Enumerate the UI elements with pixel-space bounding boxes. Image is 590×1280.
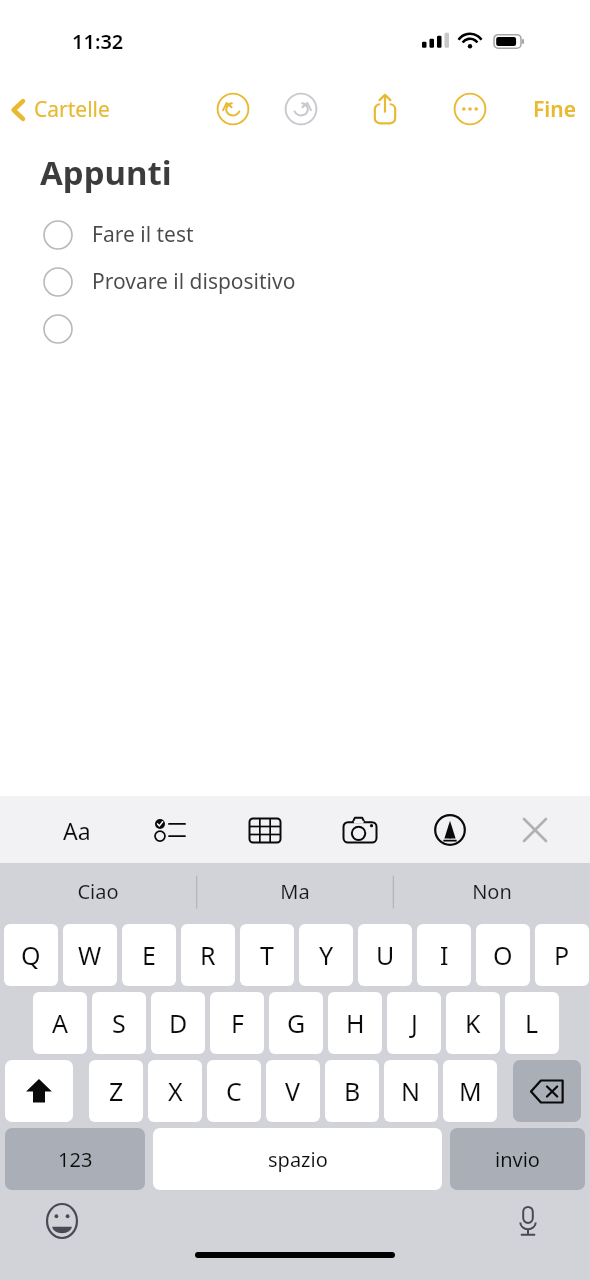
staticText: Fare il test bbox=[92, 220, 194, 249]
button[interactable]: H bbox=[328, 992, 382, 1054]
other: Backspace bbox=[530, 1079, 564, 1104]
staticText: U bbox=[376, 938, 395, 972]
button[interactable]: R bbox=[181, 924, 235, 986]
staticText: Y bbox=[319, 938, 334, 972]
button[interactable]: Table bbox=[238, 803, 292, 857]
staticText: I bbox=[440, 938, 449, 972]
staticText: W bbox=[78, 938, 102, 972]
staticText: Z bbox=[109, 1074, 124, 1108]
staticText: F bbox=[231, 1006, 244, 1040]
staticText: Aa bbox=[63, 815, 91, 846]
button[interactable]: Undo bbox=[210, 86, 256, 132]
button[interactable]: Provare il dispositivo bbox=[0, 258, 590, 305]
other: Shift bbox=[24, 1076, 54, 1106]
button[interactable]: S bbox=[92, 992, 146, 1054]
staticText: T bbox=[260, 938, 274, 972]
button[interactable]: D bbox=[151, 992, 205, 1054]
staticText: Fine bbox=[533, 95, 576, 124]
button[interactable]: Camera bbox=[333, 803, 387, 857]
button[interactable]: Y bbox=[299, 924, 353, 986]
button[interactable]: Fine bbox=[519, 87, 590, 132]
staticText: G bbox=[287, 1006, 306, 1040]
button[interactable]: K bbox=[446, 992, 500, 1054]
staticText: L bbox=[525, 1006, 539, 1040]
button[interactable]: U bbox=[358, 924, 412, 986]
staticText: R bbox=[200, 938, 216, 972]
staticText: O bbox=[493, 938, 513, 972]
staticText: X bbox=[168, 1074, 183, 1108]
staticText: C bbox=[226, 1074, 242, 1108]
staticText: Q bbox=[21, 938, 41, 972]
button[interactable]: Share bbox=[362, 86, 408, 132]
button[interactable]: A bbox=[33, 992, 87, 1054]
button[interactable]: Q bbox=[4, 924, 58, 986]
button[interactable]: More options bbox=[447, 86, 493, 132]
button[interactable]: Emoji bbox=[38, 1197, 86, 1245]
staticText: H bbox=[346, 1006, 365, 1040]
button[interactable]: G bbox=[269, 992, 323, 1054]
staticText: D bbox=[169, 1006, 188, 1040]
button[interactable] bbox=[0, 305, 590, 352]
staticText: invio bbox=[495, 1146, 540, 1173]
button[interactable]: C bbox=[207, 1060, 261, 1122]
button[interactable]: Cartelle bbox=[0, 89, 120, 130]
button[interactable]: E bbox=[122, 924, 176, 986]
button[interactable]: Close bbox=[508, 803, 562, 857]
staticText: Appunti bbox=[40, 150, 172, 195]
button[interactable]: P bbox=[535, 924, 589, 986]
staticText: V bbox=[285, 1074, 301, 1108]
button[interactable]: N bbox=[384, 1060, 438, 1122]
button[interactable]: Markup bbox=[423, 803, 477, 857]
button[interactable]: V bbox=[266, 1060, 320, 1122]
button[interactable]: Fare il test bbox=[0, 211, 590, 258]
button[interactable]: Ma bbox=[196, 863, 393, 920]
button[interactable]: invio bbox=[450, 1128, 585, 1190]
button[interactable]: T bbox=[240, 924, 294, 986]
button[interactable]: F bbox=[210, 992, 264, 1054]
button[interactable]: W bbox=[63, 924, 117, 986]
staticText: P bbox=[554, 938, 570, 972]
staticText: E bbox=[142, 938, 156, 972]
button[interactable]: I bbox=[417, 924, 471, 986]
button[interactable]: M bbox=[443, 1060, 497, 1122]
staticText: J bbox=[411, 1006, 418, 1040]
button[interactable]: J bbox=[387, 992, 441, 1054]
button[interactable]: Checklist bbox=[143, 803, 197, 857]
staticText: S bbox=[112, 1006, 126, 1040]
staticText: B bbox=[344, 1074, 361, 1108]
staticText: A bbox=[52, 1006, 68, 1040]
button[interactable]: Dictation bbox=[504, 1197, 552, 1245]
staticText: Cartelle bbox=[34, 95, 110, 124]
staticText: spazio bbox=[268, 1146, 328, 1173]
staticText: Ciao bbox=[77, 878, 119, 905]
button[interactable]: Z bbox=[89, 1060, 143, 1122]
staticText: M bbox=[459, 1074, 482, 1108]
button[interactable]: L bbox=[505, 992, 559, 1054]
button[interactable]: Ciao bbox=[0, 863, 196, 920]
button[interactable]: B bbox=[325, 1060, 379, 1122]
staticText: 123 bbox=[58, 1146, 93, 1173]
button[interactable]: Non bbox=[393, 863, 590, 920]
button[interactable]: Redo bbox=[278, 86, 324, 132]
button[interactable]: O bbox=[476, 924, 530, 986]
staticText: K bbox=[465, 1006, 481, 1040]
staticText: Ma bbox=[280, 878, 310, 905]
staticText: Non bbox=[472, 878, 512, 905]
button[interactable]: X bbox=[148, 1060, 202, 1122]
button[interactable]: Text format bbox=[52, 805, 102, 855]
staticText: 11:32 bbox=[72, 28, 124, 55]
button[interactable]: 123 bbox=[5, 1128, 145, 1190]
staticText: N bbox=[401, 1074, 421, 1108]
staticText: Provare il dispositivo bbox=[92, 267, 296, 296]
button[interactable]: Backspace bbox=[513, 1060, 581, 1122]
button[interactable]: Shift bbox=[5, 1060, 73, 1122]
button[interactable]: spazio bbox=[153, 1128, 442, 1190]
